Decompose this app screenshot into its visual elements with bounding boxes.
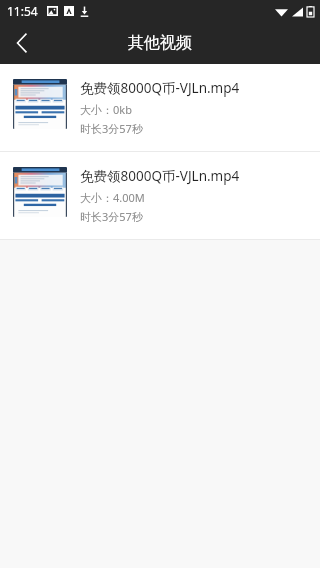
staticText: 免费领8000Q币-VJLn.mp4: [80, 167, 240, 185]
staticText: 免费领8000Q币-VJLn.mp4: [80, 79, 240, 97]
staticText: 11:54: [7, 3, 38, 19]
button[interactable]: 免费领8000Q币-VJLn.mp4: [0, 152, 320, 239]
staticText: 时长3分57秒: [80, 121, 143, 136]
button[interactable]: Back: [0, 22, 44, 64]
staticText: 大小：4.00M: [80, 190, 145, 205]
button[interactable]: 免费领8000Q币-VJLn.mp4: [0, 64, 320, 151]
staticText: 时长3分57秒: [80, 209, 143, 224]
staticText: 大小：0kb: [80, 102, 132, 117]
staticText: 其他视频: [128, 33, 192, 53]
